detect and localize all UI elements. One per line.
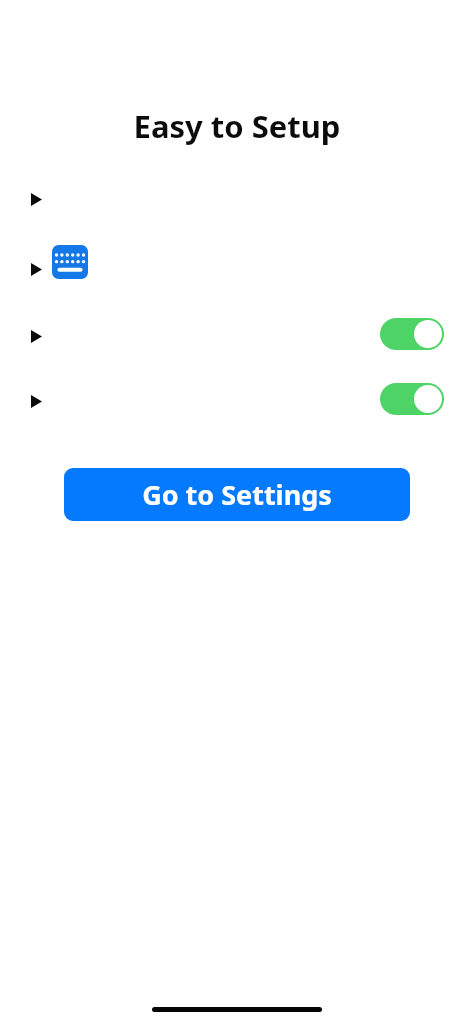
button[interactable]: Keyboard (52, 245, 88, 279)
button[interactable]: Toggle on (380, 383, 444, 415)
button[interactable]: Go to Settings (64, 468, 410, 521)
staticText: Easy to Setup (0, 105, 474, 147)
button[interactable]: Toggle on (380, 318, 444, 350)
staticText: Go to Settings (64, 476, 410, 513)
